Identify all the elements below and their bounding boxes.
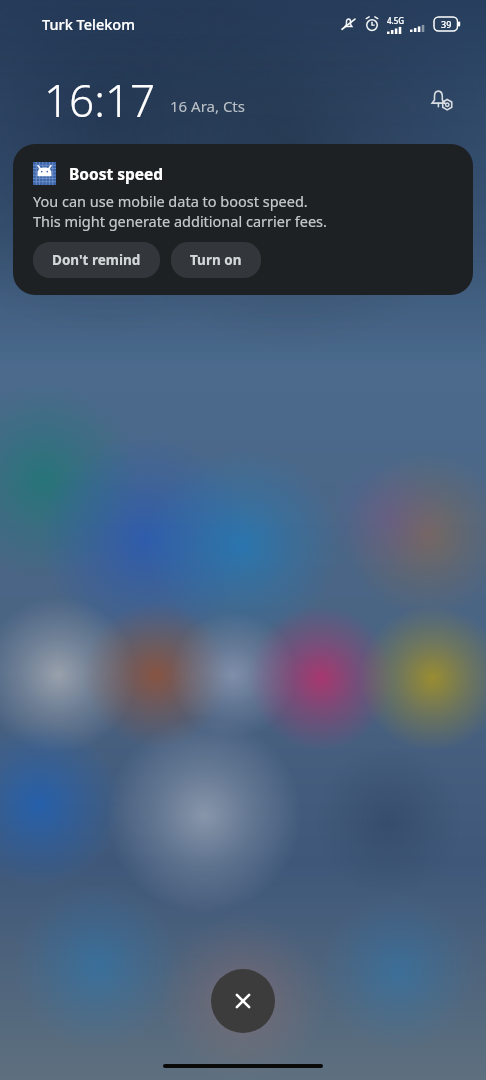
button[interactable]: Don't remind (33, 242, 160, 278)
staticText: You can use mobile data to boost speed. … (33, 191, 327, 231)
staticText: 16:17 (44, 70, 156, 130)
staticText: Turn on (190, 251, 242, 269)
staticText: 16 Ara, Cts (170, 96, 245, 116)
staticText: Turk Telekom (42, 14, 135, 34)
button[interactable]: Clear all notifications (211, 969, 275, 1033)
staticText: Don't remind (52, 251, 141, 269)
button[interactable]: Notification settings (422, 81, 460, 119)
staticText: Boost speed (69, 163, 164, 184)
staticText: 39 (441, 18, 452, 30)
button[interactable]: Turn on (171, 242, 261, 278)
staticText: 4.5G (387, 15, 405, 26)
button[interactable]: Boost speed (13, 144, 473, 295)
